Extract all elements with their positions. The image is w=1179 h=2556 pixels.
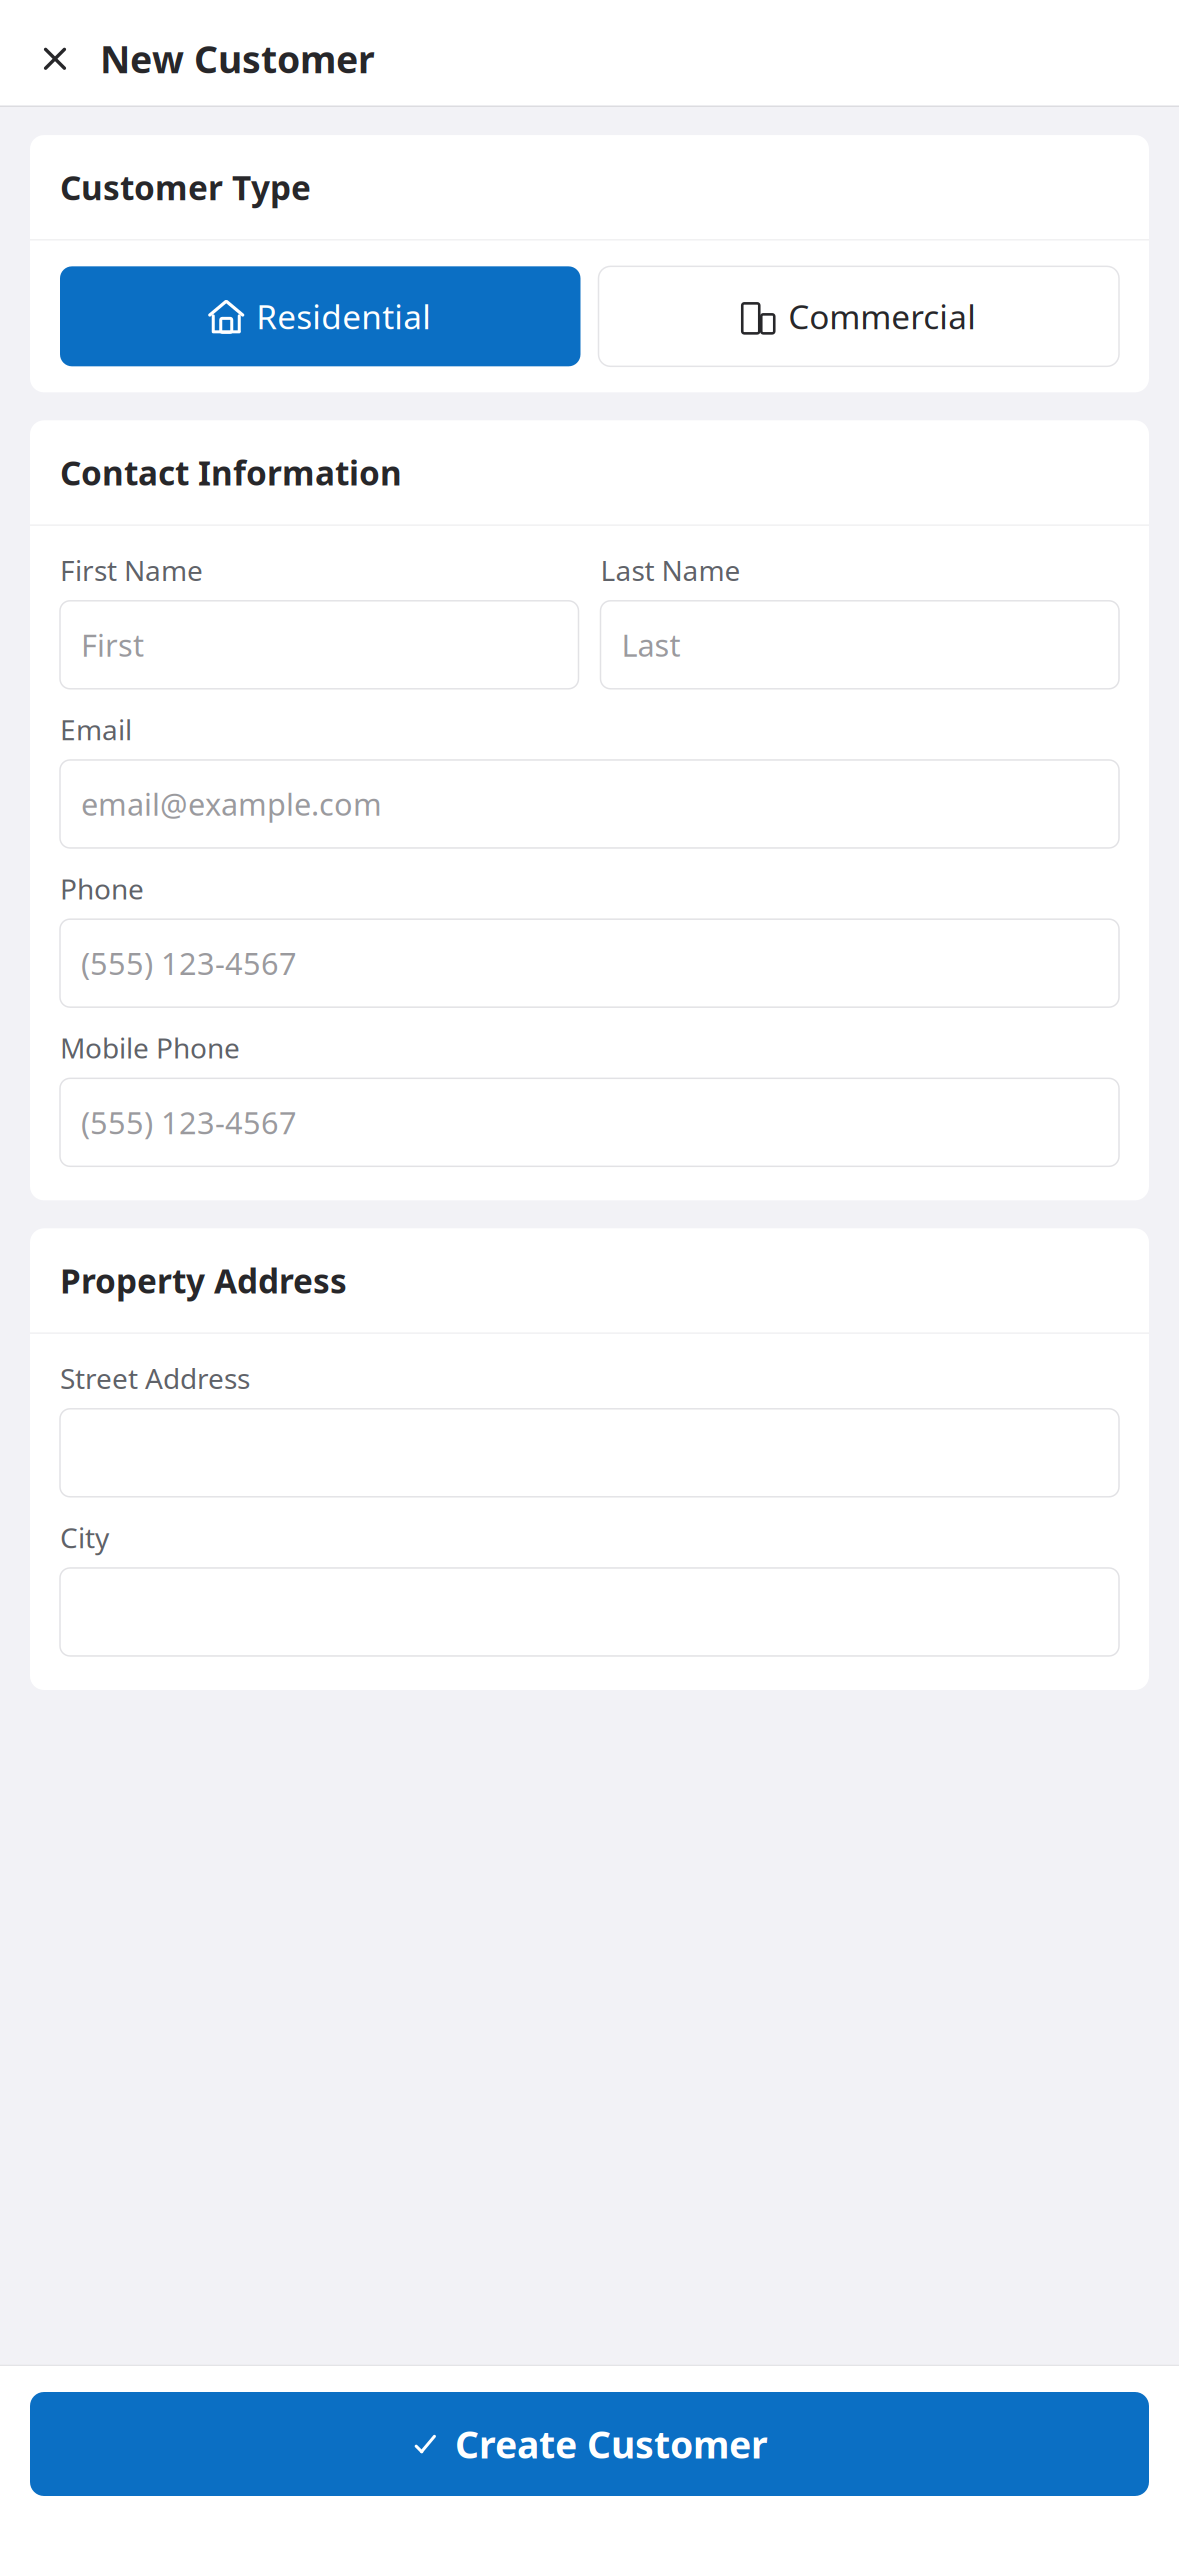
button[interactable]: Residential (60, 266, 580, 366)
button[interactable]: Create Customer (30, 2392, 1149, 2496)
staticText: (555) 123-4567 (81, 943, 297, 983)
button[interactable]: (555) 123-4567 (60, 1078, 1119, 1166)
staticText: Residential (256, 294, 431, 338)
staticText: First Name (60, 552, 203, 589)
staticText: (555) 123-4567 (81, 1102, 297, 1143)
staticText: Last (621, 624, 680, 665)
button[interactable]: (555) 123-4567 (60, 919, 1119, 1007)
button[interactable]: email@example.com (60, 760, 1119, 848)
staticText: Commercial (788, 294, 976, 338)
button[interactable]: Last (600, 601, 1119, 689)
button[interactable]: Commercial (598, 266, 1119, 366)
staticText: email@example.com (81, 784, 382, 824)
staticText: Phone (60, 870, 144, 907)
button[interactable] (60, 1568, 1119, 1656)
staticText: New Customer (100, 34, 375, 84)
staticText: Mobile Phone (60, 1029, 240, 1066)
staticText: Property Address (60, 1258, 347, 1303)
staticText: Last Name (600, 552, 740, 589)
staticText: First (81, 624, 144, 665)
staticText: Customer Type (60, 165, 311, 209)
button[interactable]: Close (32, 36, 78, 82)
staticText: Street Address (60, 1360, 250, 1397)
button[interactable]: First (60, 601, 578, 689)
staticText: City (60, 1519, 109, 1556)
staticText: Email (60, 711, 132, 748)
staticText: Contact Information (60, 450, 402, 495)
staticText: Create Customer (455, 2419, 768, 2469)
button[interactable] (60, 1409, 1119, 1497)
